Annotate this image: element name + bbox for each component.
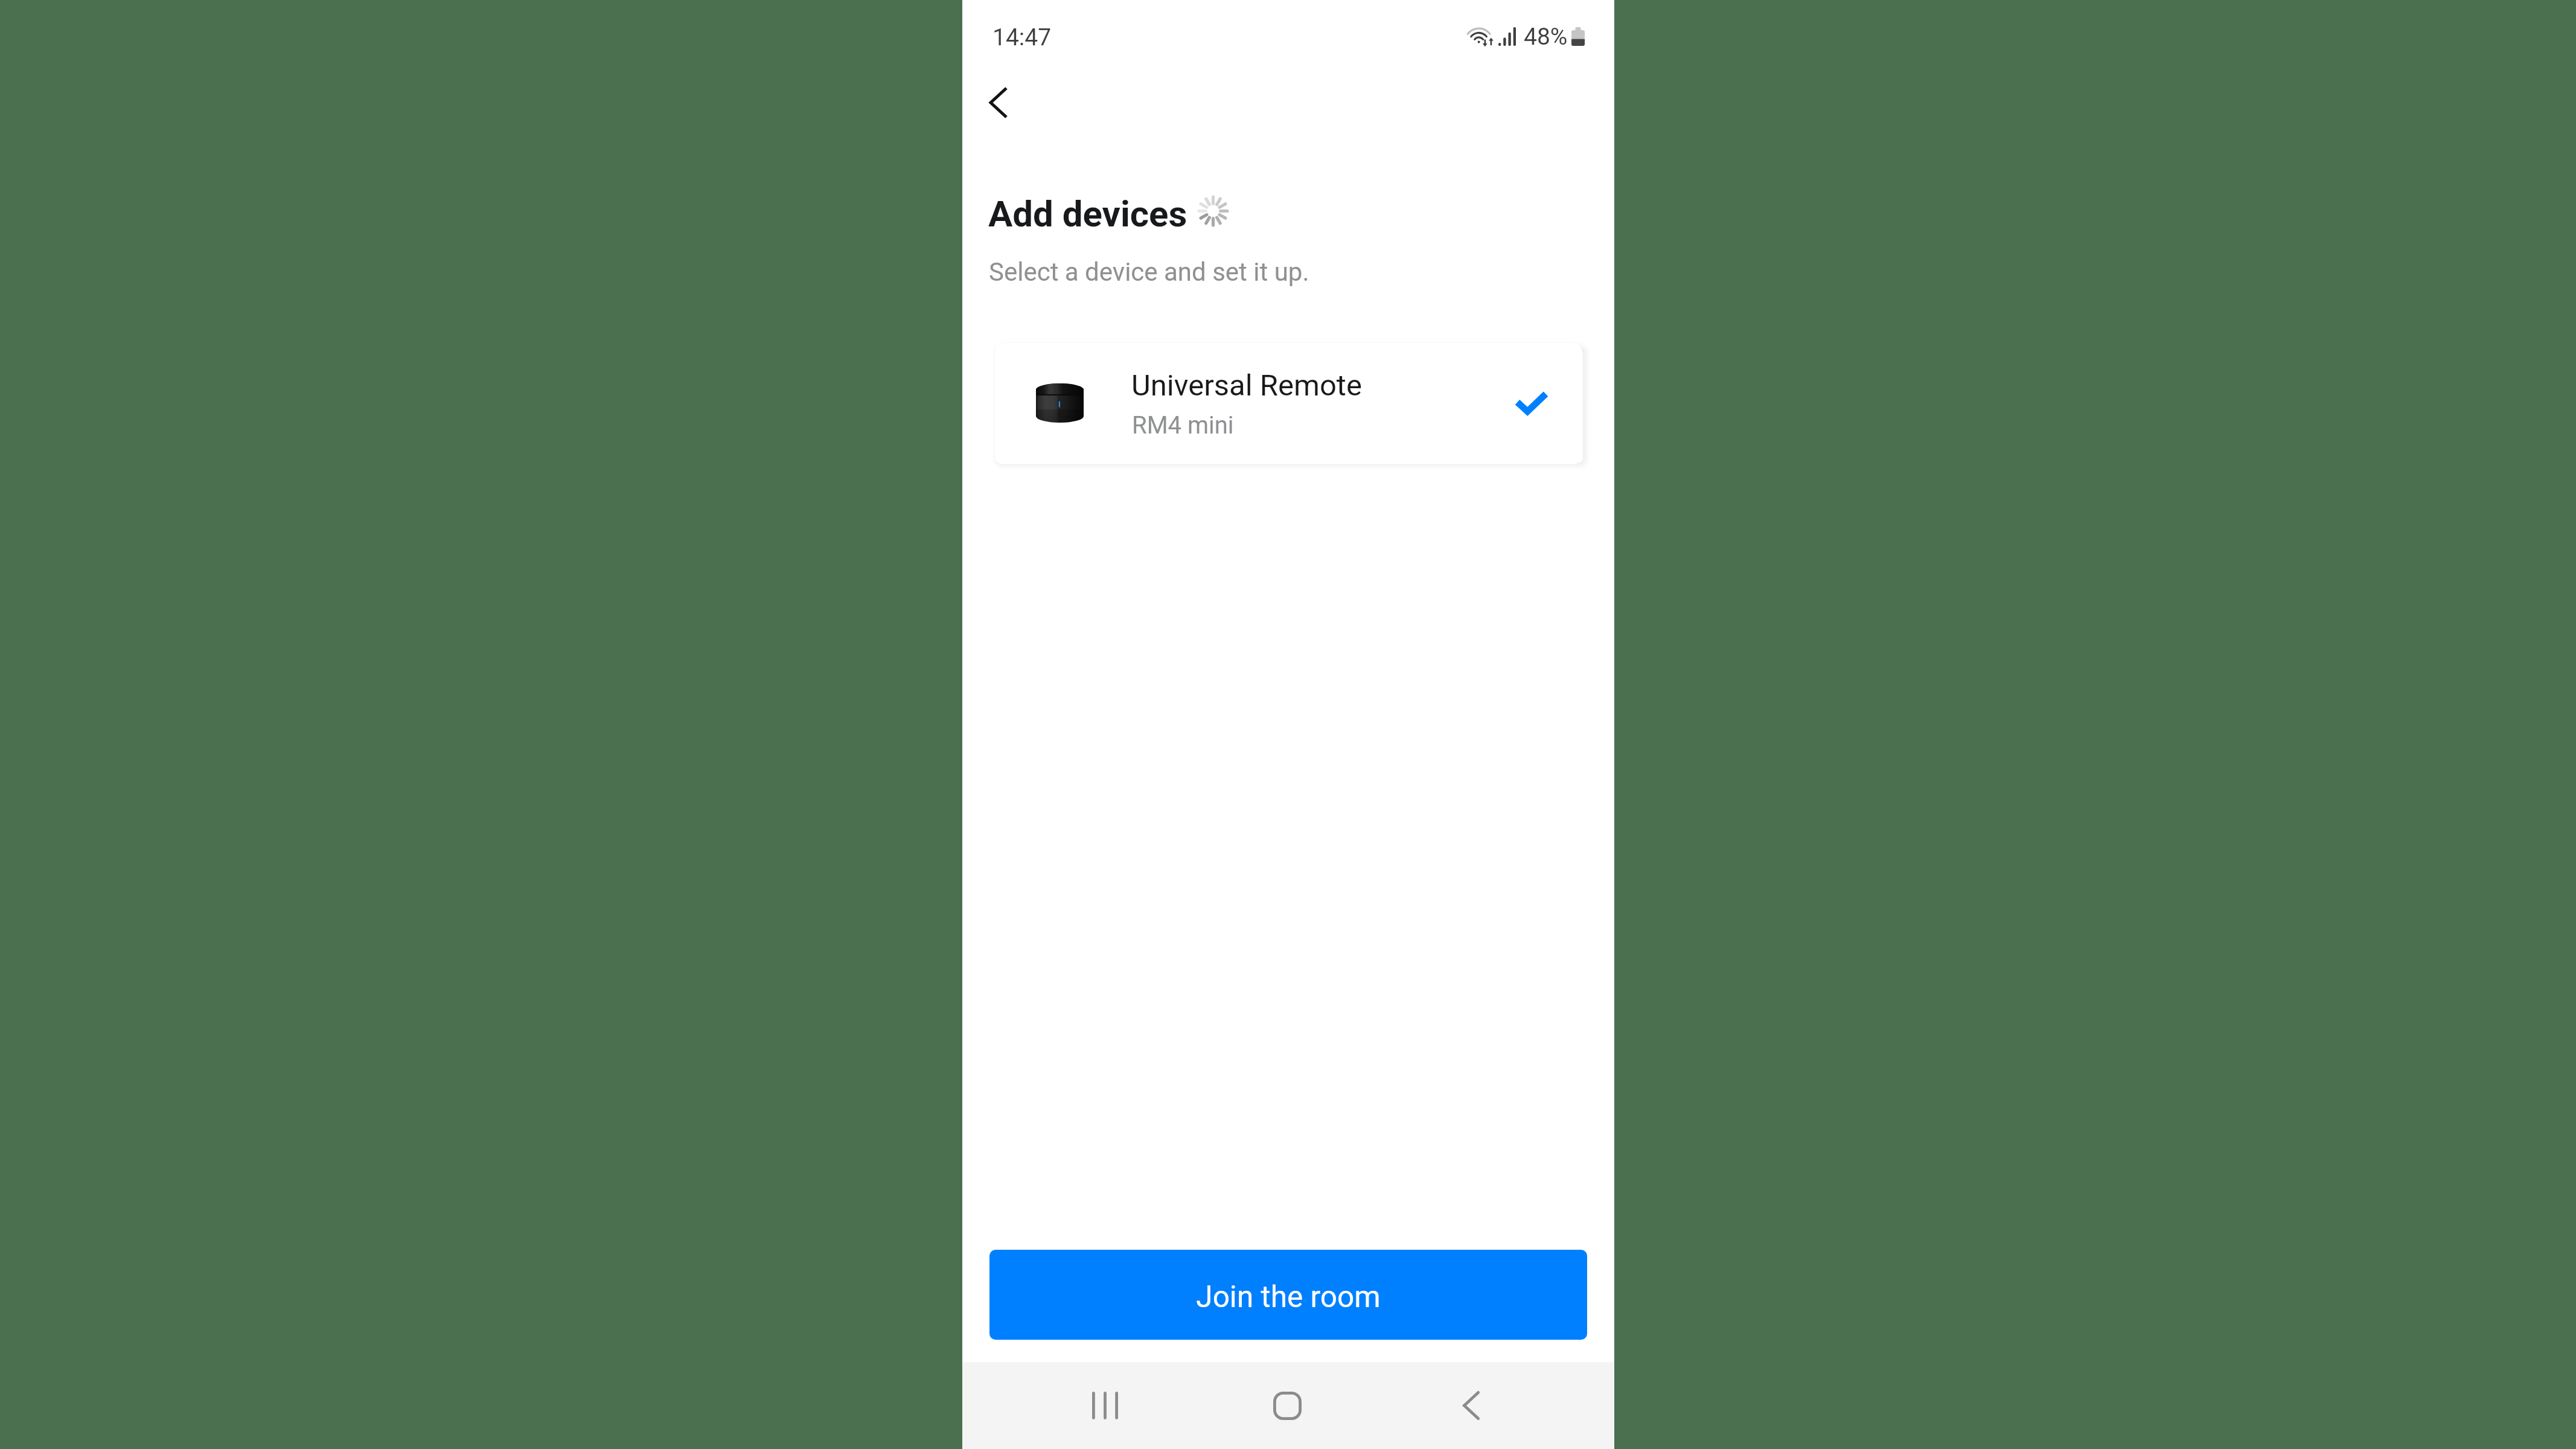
button[interactable]: Selected: [1504, 383, 1559, 422]
staticText: Join the room: [1196, 1279, 1381, 1314]
staticText: 14:47: [992, 24, 1052, 51]
button[interactable]: Home: [1253, 1378, 1321, 1433]
button[interactable]: Universal Remote: [995, 343, 1582, 464]
button[interactable]: Recent apps: [1071, 1378, 1139, 1433]
button[interactable]: Navigate up: [968, 65, 1029, 140]
staticText: Universal Remote: [1131, 368, 1362, 403]
button[interactable]: Back: [1437, 1378, 1505, 1433]
staticText: Add devices: [988, 193, 1187, 235]
button[interactable]: Join the room: [989, 1250, 1587, 1340]
staticText: Select a device and set it up.: [989, 257, 1309, 287]
staticText: RM4 mini: [1132, 411, 1234, 440]
staticText: 48%: [1524, 23, 1568, 51]
